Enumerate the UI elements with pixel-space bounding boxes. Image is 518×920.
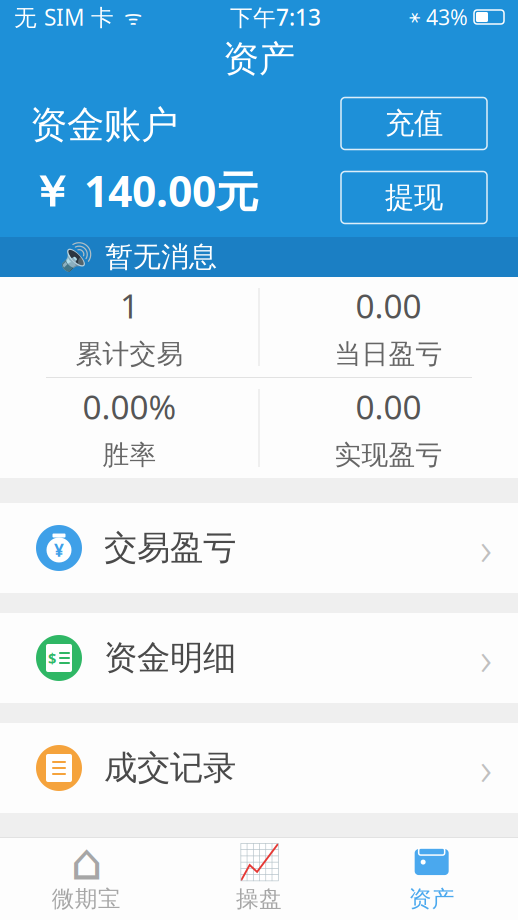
staticText: 资金账户: [30, 102, 178, 148]
staticText: 资产: [223, 37, 295, 81]
staticText: ￥ 140.00元: [30, 162, 259, 219]
staticText: 43%: [420, 3, 474, 31]
staticText: ›: [480, 518, 492, 578]
staticText: 微期宝: [52, 885, 121, 913]
staticText: 充值: [385, 105, 443, 141]
staticText: 实现盈亏: [334, 439, 442, 472]
staticText: 🔊: [60, 242, 93, 272]
staticText: 操盘: [236, 885, 282, 913]
staticText: 交易盈亏: [104, 527, 236, 568]
button[interactable]: ⌂: [0, 838, 173, 920]
staticText: $: [48, 648, 56, 668]
staticText: 无 SIM 卡: [14, 2, 114, 32]
staticText: ›: [480, 738, 492, 798]
button[interactable]: $: [0, 613, 518, 703]
staticText: ⌂: [70, 833, 102, 891]
staticText: 当日盈亏: [334, 338, 442, 371]
button[interactable]: ¥: [0, 503, 518, 593]
button[interactable]: 成交记录: [0, 723, 518, 813]
staticText: ¥: [54, 538, 64, 561]
staticText: ›: [480, 628, 492, 688]
staticText: 1: [120, 283, 139, 328]
staticText: 提现: [385, 179, 443, 215]
staticText: ᯤ: [114, 4, 142, 30]
staticText: 累计交易: [75, 338, 183, 371]
staticText: 成交记录: [104, 747, 236, 788]
button[interactable]: 提现: [341, 171, 487, 223]
staticText: 资金明细: [104, 637, 236, 678]
button[interactable]: 📈: [173, 838, 345, 920]
staticText: 0.00: [355, 384, 421, 429]
staticText: 资产: [409, 885, 455, 913]
staticText: 0.00: [355, 283, 421, 328]
staticText: 0.00%: [82, 384, 176, 429]
staticText: 下午7:13: [230, 2, 321, 32]
staticText: ⚹: [409, 8, 420, 26]
staticText: 暂无消息: [105, 240, 217, 274]
button[interactable]: 资产: [345, 838, 518, 920]
staticText: 胜率: [102, 439, 156, 472]
staticText: 📈: [237, 842, 280, 882]
button[interactable]: 充值: [341, 97, 487, 149]
